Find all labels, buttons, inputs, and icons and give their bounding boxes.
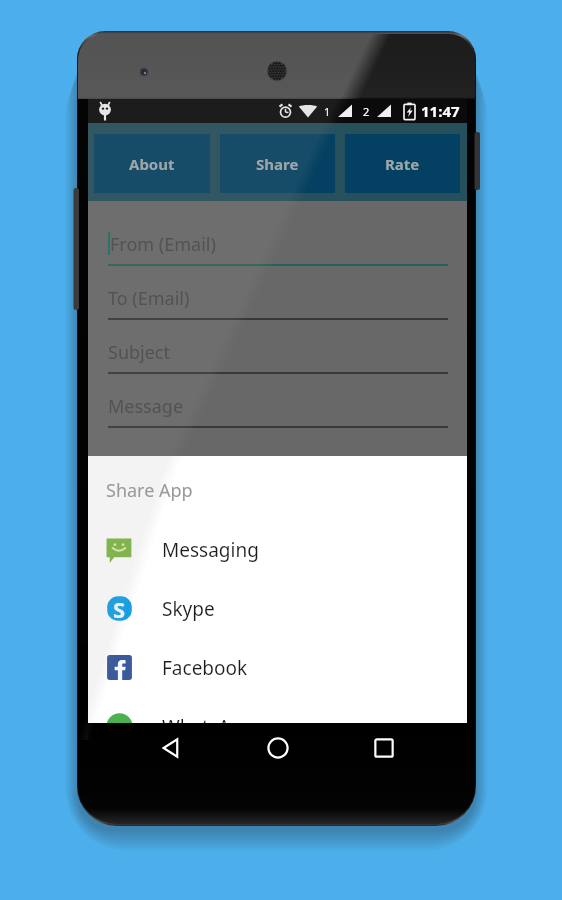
staticText: Messaging	[162, 537, 259, 563]
staticText: Message	[108, 394, 184, 419]
staticText: Share	[256, 154, 299, 174]
staticText: 1	[324, 104, 331, 119]
staticText: Subject	[108, 340, 171, 365]
button[interactable]: Rate	[345, 134, 460, 193]
staticText: S	[113, 594, 126, 621]
staticText: Skype	[162, 596, 215, 622]
staticText: 11:47	[421, 101, 460, 121]
staticText: From (Email)	[110, 232, 216, 257]
button[interactable]: Subject	[108, 320, 448, 374]
button[interactable]: Recent apps	[361, 725, 407, 771]
staticText: About	[129, 154, 175, 174]
staticText: 2	[363, 104, 370, 119]
staticText: Rate	[385, 154, 420, 174]
button[interactable]: From (Email)	[108, 201, 448, 266]
staticText: Facebook	[162, 655, 248, 681]
button[interactable]: Message	[108, 374, 448, 428]
button[interactable]: Home	[255, 725, 301, 771]
button[interactable]: Share	[220, 134, 335, 193]
staticText: WhatsApp	[162, 714, 254, 723]
button[interactable]: Facebook	[88, 638, 467, 697]
staticText: Share App	[106, 478, 193, 503]
button[interactable]: S	[88, 579, 467, 638]
button[interactable]: WhatsApp	[88, 697, 467, 723]
button[interactable]: Messaging	[88, 520, 467, 579]
button[interactable]: To (Email)	[108, 266, 448, 320]
staticText: To (Email)	[108, 286, 190, 311]
button[interactable]: Back	[148, 725, 194, 771]
button[interactable]: About	[94, 134, 210, 193]
